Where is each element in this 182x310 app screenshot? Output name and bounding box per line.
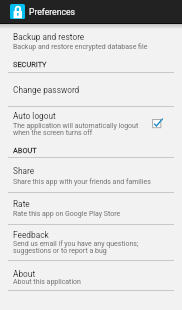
staticText: Preferences	[29, 7, 75, 17]
staticText: ABOUT	[13, 146, 37, 155]
button[interactable]: About	[0, 261, 182, 290]
staticText: Auto logout	[13, 111, 56, 121]
staticText: Backup and restore	[13, 32, 85, 42]
staticText: suggestions or to report a bug	[13, 247, 107, 255]
button[interactable]: Preferences	[0, 0, 182, 23]
staticText: Change password	[13, 85, 80, 95]
button[interactable]: Auto logout	[0, 107, 182, 141]
staticText: Send us email if you have any questions;	[13, 240, 139, 248]
staticText: Rate this app on Google Play Store	[13, 210, 121, 218]
button[interactable]: Share	[0, 158, 182, 192]
staticText: Share this app with your friends and fam…	[13, 178, 151, 186]
staticText: Rate	[13, 199, 30, 209]
button[interactable]: Feedback	[0, 225, 182, 260]
staticText: Share	[13, 166, 35, 176]
staticText: About this application	[13, 278, 81, 286]
staticText: About	[13, 269, 36, 279]
staticText: Feedback	[13, 230, 49, 240]
staticText: when the screen turns off	[13, 129, 93, 137]
button[interactable]: Rate	[0, 193, 182, 224]
button[interactable]: Change password	[0, 73, 182, 106]
button[interactable]: Backup and restore	[0, 24, 182, 56]
staticText: Backup and restore encrypted database fi…	[13, 43, 148, 51]
staticText: SECURITY	[13, 60, 47, 69]
staticText: The application will automatically logou…	[13, 122, 139, 130]
